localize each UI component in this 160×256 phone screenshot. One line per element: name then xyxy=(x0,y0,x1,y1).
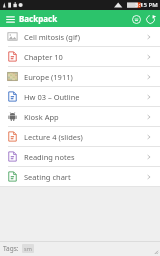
staticText: Europe (1911) xyxy=(24,72,145,82)
button[interactable]: Comments xyxy=(129,12,143,26)
button[interactable]: Open navigation drawer xyxy=(4,13,16,25)
staticText: Lecture 4 (slides) xyxy=(24,132,145,142)
button[interactable]: Seating chart xyxy=(0,167,160,186)
staticText: Chapter 10 xyxy=(24,52,145,62)
staticText: Kiosk App xyxy=(24,112,145,122)
button[interactable]: Cell mitosis (gif) xyxy=(0,27,160,46)
button[interactable]: Refresh xyxy=(143,12,157,26)
button[interactable]: Lecture 4 (slides) xyxy=(0,127,160,146)
staticText: Backpack xyxy=(19,13,58,24)
button[interactable]: Tags: xyxy=(3,244,34,253)
button[interactable]: Hw 03 – Outline xyxy=(0,87,160,106)
staticText: Seating chart xyxy=(24,172,145,182)
staticText: Hw 03 – Outline xyxy=(24,92,145,102)
button[interactable]: Chapter 10 xyxy=(0,47,160,66)
button[interactable]: Europe (1911) xyxy=(0,67,160,86)
staticText: Cell mitosis (gif) xyxy=(24,32,145,42)
staticText: 3:15 PM xyxy=(135,1,158,9)
staticText: sm xyxy=(24,245,32,252)
staticText: Reading notes xyxy=(24,152,145,162)
button[interactable]: Kiosk App xyxy=(0,107,160,126)
button[interactable]: Reading notes xyxy=(0,147,160,166)
staticText: Tags: xyxy=(3,244,19,253)
